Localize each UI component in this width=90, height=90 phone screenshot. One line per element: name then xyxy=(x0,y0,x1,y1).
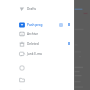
staticText: Drafts xyxy=(27,7,37,11)
button[interactable]: Drafts xyxy=(0,4,73,13)
button[interactable]: Deleted Items xyxy=(0,39,73,48)
staticText: Junk E-ma xyxy=(27,52,42,56)
staticText: Deleted xyxy=(27,42,39,46)
button[interactable]: Folder xyxy=(0,75,73,84)
button[interactable]: Push progress xyxy=(0,20,73,29)
button[interactable]: Archive xyxy=(0,29,73,38)
button[interactable]: Junk E-mail xyxy=(0,49,73,58)
staticText: Push prog xyxy=(27,23,43,27)
staticText: Archive xyxy=(27,32,39,36)
button[interactable]: Notes xyxy=(0,63,73,72)
